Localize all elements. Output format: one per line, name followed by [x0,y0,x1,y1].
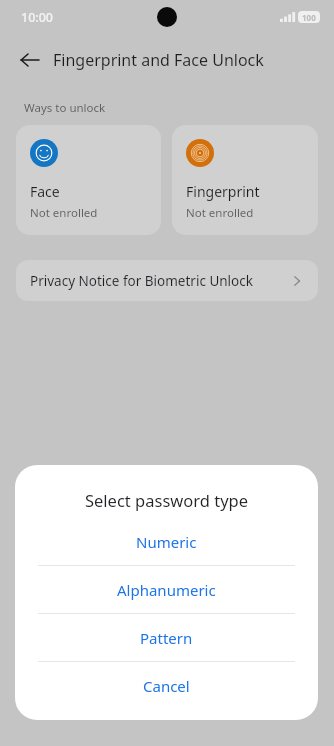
staticText: Ways to unlock [24,100,106,116]
button[interactable]: Fingerprint [172,125,318,235]
button[interactable]: Back [10,40,50,80]
button[interactable]: Numeric [15,518,318,565]
button[interactable]: Alphanumeric [15,566,318,613]
staticText: Face [30,182,60,201]
staticText: Not enrolled [186,205,254,221]
staticText: Fingerprint [186,182,260,201]
staticText: Pattern [140,628,193,648]
button[interactable]: Pattern [15,614,318,661]
staticText: Not enrolled [30,205,98,221]
button[interactable]: Cancel [15,662,318,709]
staticText: Numeric [136,532,197,552]
staticText: Cancel [143,676,190,696]
staticText: Fingerprint and Face Unlock [53,49,264,71]
staticText: Alphanumeric [117,580,216,600]
staticText: Select password type [15,489,318,511]
staticText: Privacy Notice for Biometric Unlock [30,272,290,290]
button[interactable]: Face [16,125,161,235]
button[interactable]: Privacy Notice for Biometric Unlock [16,260,318,301]
staticText: 100 [302,12,316,23]
staticText: 10:00 [21,9,54,26]
